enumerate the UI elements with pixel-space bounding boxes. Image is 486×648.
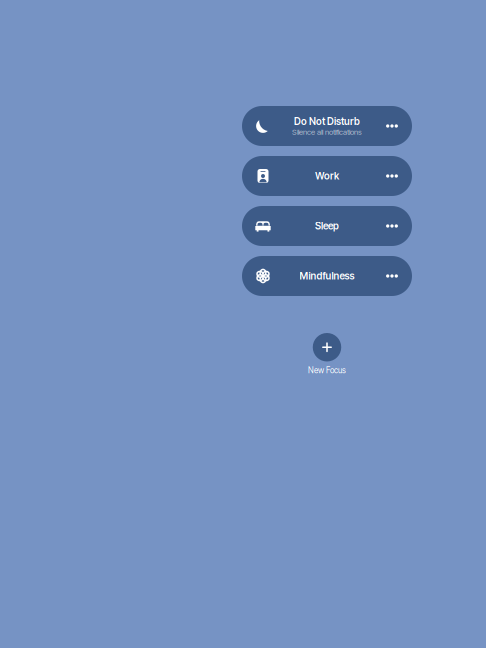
staticText: Work [315,170,339,182]
staticText: New Focus [308,365,346,375]
button[interactable]: New Focus [287,333,367,375]
button[interactable]: More options for Mindfulness [379,259,405,293]
staticText: Silence all notifications [292,127,362,137]
button[interactable]: Work [242,156,412,196]
button[interactable]: Sleep [242,206,412,246]
staticText: Do Not Disturb [294,115,360,127]
staticText: Mindfulness [299,270,354,282]
button[interactable]: Do Not Disturb [242,106,412,146]
button[interactable]: More options for Do Not Disturb [379,109,405,143]
button[interactable]: Mindfulness [242,256,412,296]
button[interactable]: More options for Sleep [379,209,405,243]
button[interactable]: More options for Work [379,159,405,193]
staticText: Sleep [315,220,339,232]
